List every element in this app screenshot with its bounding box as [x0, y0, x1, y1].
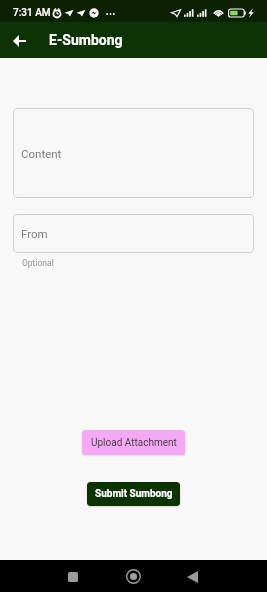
button[interactable]: Recent apps [59, 563, 86, 590]
staticText: E-Sumbong [49, 32, 123, 48]
button[interactable]: Submit Sumbong [87, 482, 180, 506]
staticText: Content [21, 147, 62, 160]
staticText: Submit Sumbong [95, 488, 173, 500]
button[interactable]: From [13, 214, 254, 253]
button[interactable]: Back [179, 563, 206, 590]
staticText: Optional [22, 258, 54, 268]
staticText: 7:31 AM [13, 7, 51, 19]
button[interactable]: Back [7, 28, 32, 53]
button[interactable]: Content [13, 108, 254, 198]
button[interactable]: Upload Attachment [82, 430, 185, 455]
button[interactable]: Home [120, 563, 147, 590]
staticText: Upload Attachment [91, 437, 177, 449]
staticText: From [21, 227, 48, 240]
